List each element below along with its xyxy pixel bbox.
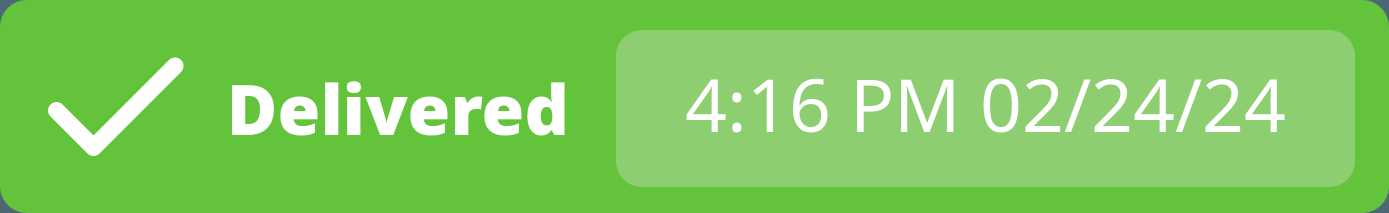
button[interactable]: Delivered <box>0 0 1389 213</box>
staticText: Delivered <box>226 62 569 154</box>
staticText: 4:16 PM 02/24/24 <box>685 55 1286 152</box>
